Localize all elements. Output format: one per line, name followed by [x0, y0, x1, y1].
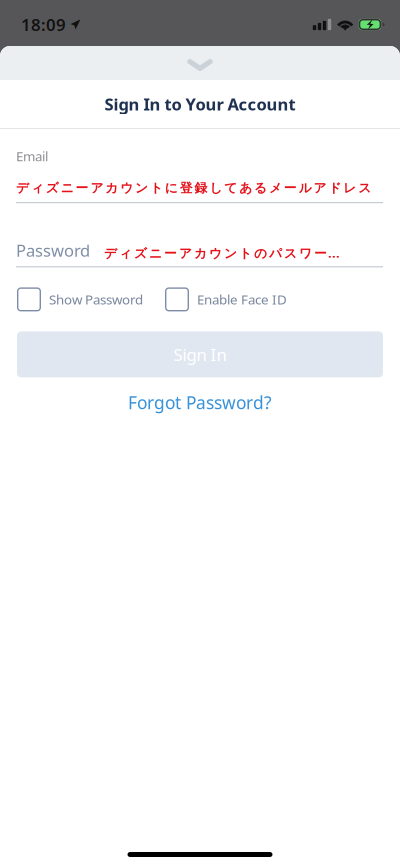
- button[interactable]: Enable Face ID: [165, 287, 287, 311]
- staticText: Forgot Password?: [128, 391, 272, 414]
- staticText: Email: [16, 147, 48, 165]
- staticText: Sign In to Your Account: [104, 93, 295, 115]
- staticText: Enable Face ID: [197, 290, 287, 308]
- button[interactable]: Dismiss: [173, 46, 227, 80]
- staticText: Sign In: [173, 343, 226, 366]
- staticText: 18:09: [21, 13, 66, 36]
- button[interactable]: Forgot Password?: [110, 391, 290, 413]
- staticText: ディズニーアカウントのパスワード: [104, 244, 340, 261]
- staticText: ディズニーアカウントに登録してあるメールアドレス: [16, 180, 371, 196]
- button[interactable]: Show Password: [17, 287, 143, 311]
- staticText: Show Password: [49, 290, 143, 308]
- button[interactable]: Sign In: [17, 331, 383, 377]
- staticText: Password: [16, 239, 90, 261]
